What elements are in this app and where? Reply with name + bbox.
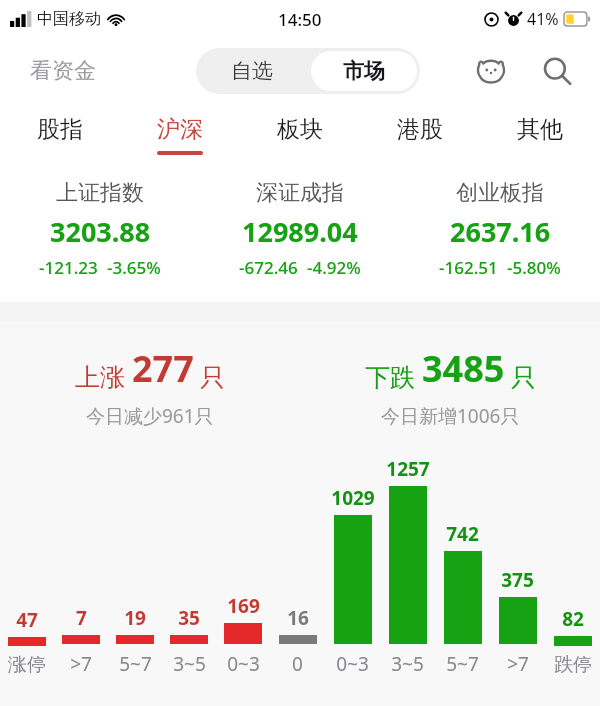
button[interactable]: 其他 xyxy=(480,104,600,166)
staticText: 41% xyxy=(527,8,559,30)
button[interactable]: 看资金 xyxy=(26,51,100,91)
staticText: 3~5 xyxy=(391,651,424,677)
staticText: 3~5 xyxy=(173,651,206,677)
button[interactable]: 板块 xyxy=(240,104,360,166)
staticText: 下跌 xyxy=(365,362,415,393)
staticText: 深证成指 xyxy=(256,179,344,207)
staticText: 12989.04 xyxy=(242,213,358,250)
staticText: 沪深 xyxy=(157,115,203,144)
button[interactable]: 下跌 xyxy=(300,342,600,431)
staticText: 只 xyxy=(511,362,536,393)
staticText: 16 xyxy=(287,605,309,631)
staticText: 0~3 xyxy=(227,651,260,677)
staticText: 上证指数 xyxy=(56,179,144,207)
staticText: 19 xyxy=(124,605,146,631)
staticText: 今日新增1006只 xyxy=(381,403,520,429)
button[interactable]: 创业板指 xyxy=(400,166,600,302)
button[interactable]: 375 xyxy=(490,567,545,677)
staticText: 涨停 xyxy=(8,653,46,677)
staticText: 只 xyxy=(200,362,225,393)
button[interactable]: 1257 xyxy=(380,456,435,677)
button[interactable]: 深证成指 xyxy=(200,166,400,302)
button[interactable]: 市场 xyxy=(311,51,417,91)
button[interactable]: 1029 xyxy=(325,485,380,677)
button[interactable]: 沪深 xyxy=(120,104,240,166)
button[interactable]: 港股 xyxy=(360,104,480,166)
staticText: >7 xyxy=(70,651,92,677)
staticText: 股指 xyxy=(37,115,83,144)
staticText: 35 xyxy=(178,605,200,631)
staticText: 跌停 xyxy=(554,653,592,677)
staticText: 0~3 xyxy=(336,651,369,677)
button[interactable]: 上涨 xyxy=(0,342,300,431)
staticText: 47 xyxy=(16,607,38,633)
button[interactable]: 35 xyxy=(162,605,216,677)
button[interactable]: 上证指数 xyxy=(0,166,200,302)
button[interactable]: Assistant xyxy=(470,50,512,92)
button[interactable]: 19 xyxy=(108,605,162,677)
button[interactable]: 47 xyxy=(0,607,54,677)
button[interactable]: 742 xyxy=(435,521,490,677)
staticText: 中国移动 xyxy=(37,9,101,29)
staticText: 看资金 xyxy=(30,57,96,85)
staticText: 742 xyxy=(446,521,479,547)
button[interactable]: 7 xyxy=(54,605,108,677)
staticText: -3.65% xyxy=(107,256,161,279)
staticText: 169 xyxy=(227,593,260,619)
staticText: 82 xyxy=(562,606,584,632)
staticText: 1029 xyxy=(331,485,375,511)
staticText: 5~7 xyxy=(446,651,479,677)
staticText: -4.92% xyxy=(307,256,361,279)
staticText: 3203.88 xyxy=(50,213,151,250)
staticText: 5~7 xyxy=(119,651,152,677)
staticText: 板块 xyxy=(277,115,323,144)
staticText: 14:50 xyxy=(278,8,322,31)
button[interactable]: 169 xyxy=(216,593,270,677)
staticText: 今日减少961只 xyxy=(86,403,214,429)
staticText: -672.46 xyxy=(239,256,298,279)
button[interactable]: 自选 xyxy=(196,48,308,94)
button[interactable]: 股指 xyxy=(0,104,120,166)
staticText: 277 xyxy=(132,344,194,393)
staticText: 市场 xyxy=(343,58,385,84)
staticText: 375 xyxy=(501,567,534,593)
staticText: 其他 xyxy=(517,115,563,144)
staticText: 3485 xyxy=(422,344,505,393)
button[interactable]: Search xyxy=(536,50,578,92)
staticText: 0 xyxy=(292,651,303,677)
staticText: 创业板指 xyxy=(456,179,544,207)
staticText: 2637.16 xyxy=(450,213,551,250)
staticText: 自选 xyxy=(231,58,273,84)
staticText: >7 xyxy=(507,651,529,677)
button[interactable]: 82 xyxy=(545,606,600,677)
staticText: -121.23 xyxy=(39,256,98,279)
staticText: 港股 xyxy=(397,115,443,144)
staticText: 上涨 xyxy=(75,362,125,393)
button[interactable]: 16 xyxy=(270,605,325,677)
staticText: 1257 xyxy=(386,456,430,482)
staticText: 7 xyxy=(76,605,87,631)
staticText: -162.51 xyxy=(439,256,498,279)
staticText: -5.80% xyxy=(507,256,561,279)
